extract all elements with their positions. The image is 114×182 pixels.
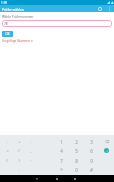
button[interactable]: More options <box>105 5 113 12</box>
staticText: 78 <box>4 22 8 26</box>
button[interactable]: ( <box>1 156 13 165</box>
button[interactable]: ) <box>13 156 25 165</box>
button[interactable]: 6 <box>84 146 99 155</box>
staticText: . <box>30 139 32 144</box>
staticText: 7 <box>60 158 63 164</box>
button[interactable]: / <box>13 146 25 155</box>
staticText: ) <box>18 158 20 163</box>
button[interactable]: 4 <box>54 146 69 155</box>
staticText: + <box>18 139 21 144</box>
button[interactable]: * <box>54 165 69 174</box>
button[interactable]: Home <box>51 175 63 182</box>
staticText: Prüfer wählen <box>2 7 24 11</box>
staticText: * <box>60 167 63 173</box>
staticText: 5 <box>75 148 78 154</box>
button[interactable]: 1 <box>54 137 69 146</box>
staticText: 2 <box>75 139 78 145</box>
button[interactable]: 3 <box>84 137 99 146</box>
staticText: = <box>6 148 9 153</box>
button[interactable]: 78 <box>2 20 112 27</box>
staticText: Wähle Prüfernummer <box>2 15 34 19</box>
staticText: 6 <box>90 148 93 154</box>
button[interactable]: Backspace <box>99 137 114 146</box>
staticText: 4 <box>60 148 63 154</box>
button[interactable]: 7 <box>54 156 69 165</box>
staticText: Ungültige Nummer x <box>2 39 33 43</box>
button[interactable]: Enter <box>99 146 114 155</box>
button[interactable]: + <box>13 137 25 146</box>
button[interactable]: Recents <box>69 175 81 182</box>
button[interactable]: # <box>84 165 99 174</box>
staticText: · <box>30 158 32 163</box>
button[interactable]: 5 <box>69 146 84 155</box>
staticText: , <box>30 148 32 153</box>
button[interactable]: Help <box>95 5 105 12</box>
staticText: - <box>18 167 20 172</box>
staticText: 1:18 <box>1 1 7 5</box>
staticText: 1 <box>60 139 63 145</box>
button[interactable]: 2 <box>69 137 84 146</box>
button[interactable]: 9 <box>84 156 99 165</box>
button[interactable]: = <box>1 146 13 155</box>
staticText: / <box>18 148 20 153</box>
staticText: OK <box>5 32 10 36</box>
staticText: # <box>90 167 93 173</box>
staticText: 8 <box>75 158 78 164</box>
staticText: 0 <box>75 167 78 173</box>
staticText: 3 <box>90 139 93 145</box>
staticText: - <box>6 139 8 144</box>
button[interactable]: OK <box>2 31 13 37</box>
staticText: 9 <box>90 158 93 164</box>
button[interactable]: Back <box>31 175 43 182</box>
staticText: ( <box>6 158 8 163</box>
button[interactable]: 0 <box>69 165 84 174</box>
button[interactable]: 8 <box>69 156 84 165</box>
